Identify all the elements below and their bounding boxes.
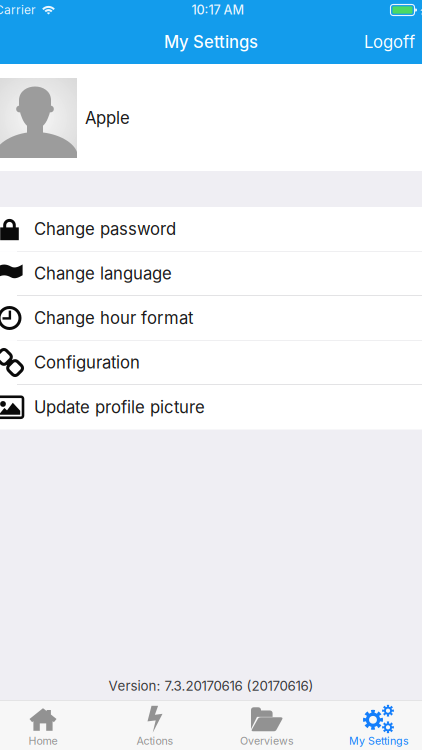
button[interactable]: Apple — [0, 64, 422, 171]
button[interactable]: Change hour format — [0, 296, 422, 340]
button[interactable]: Logoff — [352, 21, 422, 63]
staticText: My Settings — [349, 734, 409, 747]
button[interactable]: Actions — [99, 700, 211, 750]
button[interactable]: Home — [0, 700, 99, 750]
button[interactable]: My Settings — [323, 700, 422, 750]
button[interactable]: Change password — [0, 207, 422, 251]
staticText: Apple — [85, 108, 130, 128]
staticText: Overviews — [240, 734, 294, 747]
button[interactable]: Configuration — [0, 340, 422, 385]
staticText: Change language — [34, 263, 172, 284]
staticText: My Settings — [164, 32, 258, 52]
staticText: Change password — [34, 219, 176, 239]
button[interactable]: Change language — [0, 251, 422, 296]
staticText: Carrier — [0, 3, 36, 17]
staticText: Home — [28, 734, 57, 747]
staticText: Update profile picture — [34, 397, 205, 417]
button[interactable]: Update profile picture — [0, 385, 422, 429]
staticText: Change hour format — [34, 308, 193, 328]
staticText: 10:17 AM — [191, 2, 244, 18]
staticText: Version: 7.3.20170616 (20170616) — [108, 678, 313, 694]
staticText: Actions — [136, 734, 173, 747]
button[interactable]: Overviews — [211, 700, 323, 750]
staticText: Logoff — [364, 32, 415, 52]
staticText: Configuration — [34, 352, 140, 373]
